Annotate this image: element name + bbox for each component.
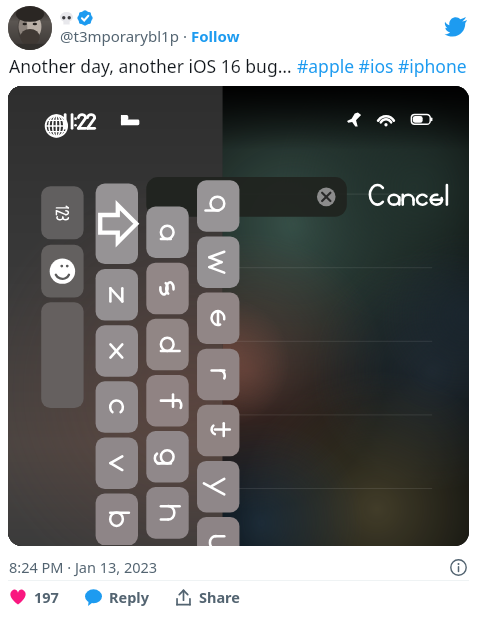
staticText: @t3mporarybl1p (60, 26, 179, 46)
button[interactable]: Reply (85, 587, 149, 607)
staticText: Follow (191, 26, 240, 46)
staticText: 8:24 PM · Jan 13, 2023 (9, 557, 158, 577)
staticText: Share (199, 587, 240, 607)
button[interactable]: Profile photo (8, 6, 52, 50)
button[interactable]: 197 (9, 587, 59, 607)
button[interactable]: #apple #ios #iphone (297, 54, 467, 78)
staticText: Another day, another iOS 16 bug… (9, 54, 297, 78)
staticText: #apple #ios #iphone (297, 54, 467, 78)
button[interactable]: Follow (191, 26, 240, 46)
button[interactable]: Twitter (443, 15, 469, 41)
button[interactable]: About this post (448, 557, 468, 577)
button[interactable]: Screenshot of iOS keyboard bug (8, 86, 469, 546)
staticText: Reply (109, 587, 149, 607)
button[interactable]: Share (175, 587, 240, 607)
staticText: · (179, 26, 191, 46)
staticText: 197 (34, 587, 59, 607)
